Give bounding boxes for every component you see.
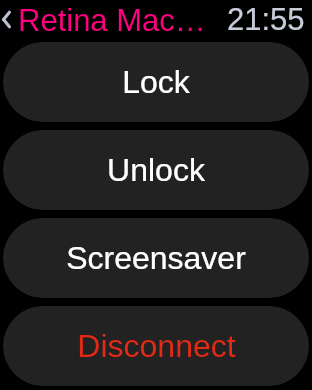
button[interactable]: Lock	[3, 42, 309, 122]
staticText: Screensaver	[66, 240, 246, 276]
staticText: Disconnect	[77, 328, 236, 364]
button[interactable]: Back to Retina Mac	[0, 0, 210, 36]
staticText: 21:55	[227, 2, 305, 37]
staticText: Retina Mac…	[18, 3, 206, 38]
staticText: Unlock	[107, 152, 205, 188]
button[interactable]: Screensaver	[3, 218, 309, 298]
staticText: Lock	[122, 64, 190, 100]
button[interactable]: Disconnect	[3, 306, 309, 386]
button[interactable]: Unlock	[3, 130, 309, 210]
